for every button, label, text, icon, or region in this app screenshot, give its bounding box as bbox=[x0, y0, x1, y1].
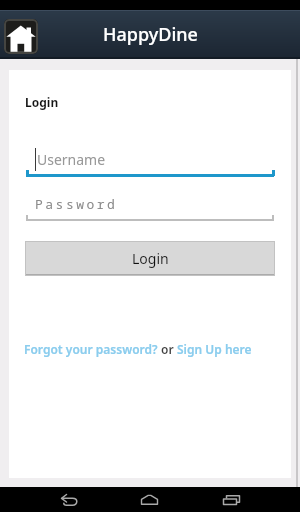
button[interactable]: Password bbox=[25, 193, 275, 223]
button[interactable] bbox=[219, 487, 251, 512]
button[interactable]: Username bbox=[25, 146, 275, 178]
staticText: Password bbox=[35, 195, 118, 213]
button[interactable] bbox=[134, 487, 166, 512]
button[interactable] bbox=[54, 487, 86, 512]
staticText: Username bbox=[37, 150, 106, 169]
staticText: Login bbox=[132, 249, 169, 268]
button[interactable] bbox=[4, 19, 38, 54]
staticText: Login bbox=[25, 94, 59, 110]
staticText: or bbox=[158, 341, 177, 357]
staticText: HappyDine bbox=[103, 22, 198, 47]
button[interactable]: Login bbox=[25, 241, 275, 276]
button[interactable]: Forgot your password? bbox=[24, 341, 158, 357]
button[interactable]: Sign Up here bbox=[177, 341, 252, 357]
